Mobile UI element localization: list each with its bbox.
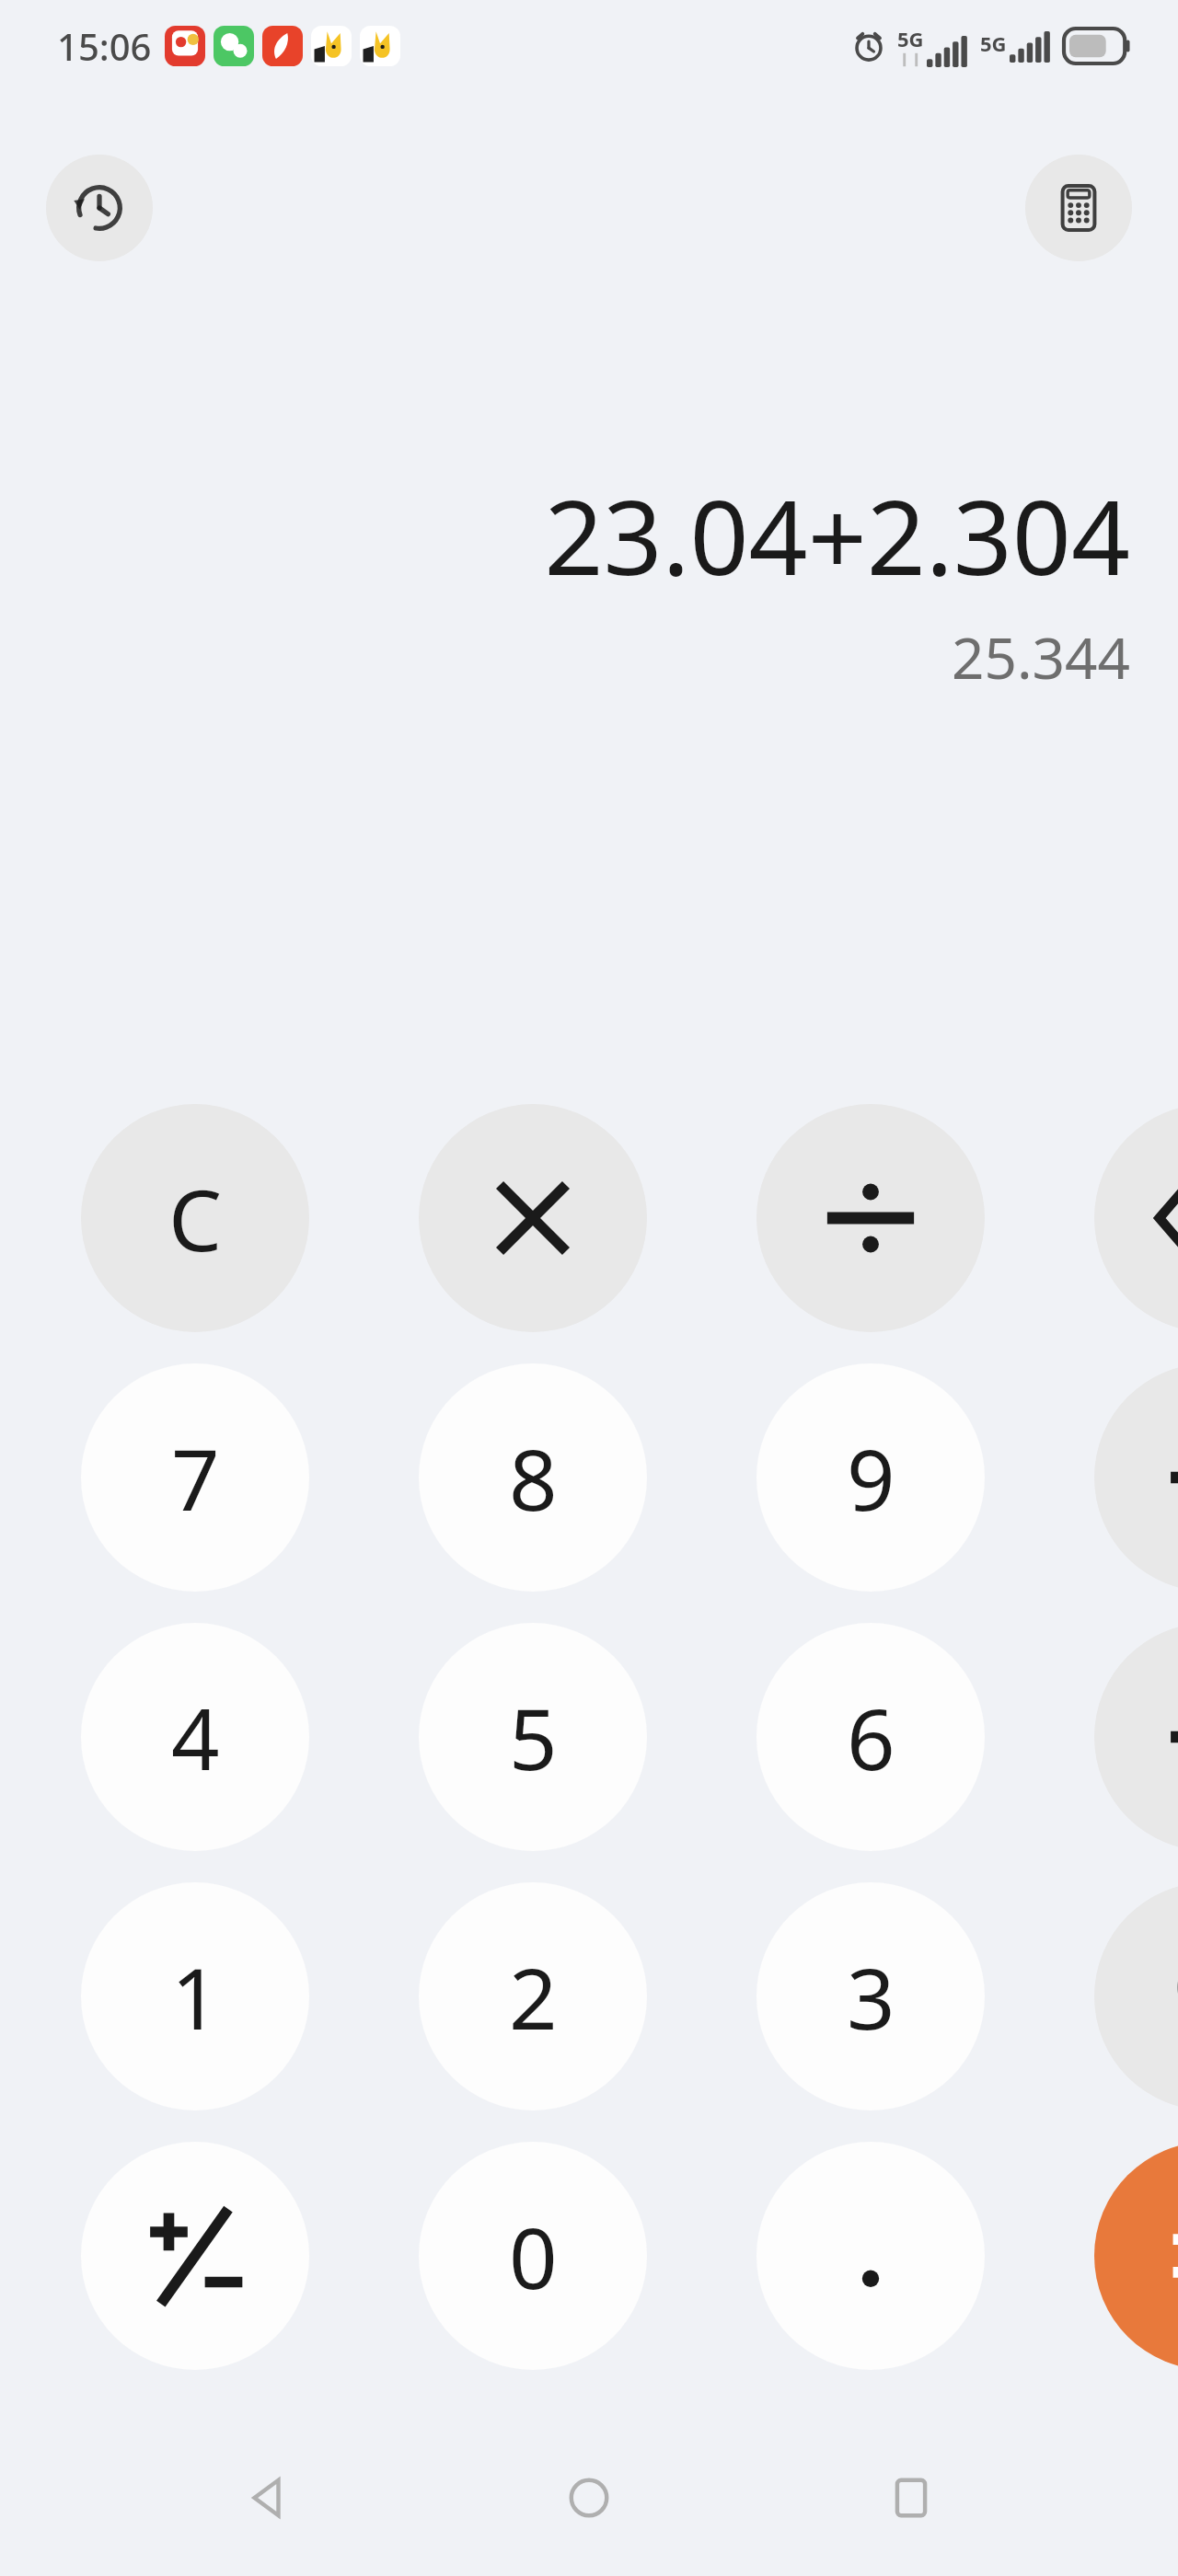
button[interactable]: 9 — [756, 1363, 985, 1592]
button[interactable]: 3 — [756, 1882, 985, 2110]
staticText: 2 — [509, 1939, 558, 2054]
staticText: 15:06 — [57, 21, 152, 71]
button[interactable]: = — [1094, 2142, 1178, 2370]
staticText: 25.344 — [952, 618, 1130, 696]
staticText: 9 — [847, 1420, 895, 1535]
staticText: % — [1173, 1939, 1178, 2054]
button[interactable]: plus minus — [81, 2142, 309, 2370]
staticText: 7 — [171, 1420, 220, 1535]
button[interactable]: 4 — [81, 1623, 309, 1851]
button[interactable]: 0 — [419, 2142, 647, 2370]
staticText: 3 — [847, 1939, 895, 2054]
button[interactable]: divide — [756, 1104, 985, 1332]
button[interactable]: . — [756, 2142, 985, 2370]
button[interactable]: 7 — [81, 1363, 309, 1592]
button[interactable]: 2 — [419, 1882, 647, 2110]
button[interactable]: History — [46, 155, 153, 261]
staticText: 6 — [847, 1680, 895, 1795]
button[interactable]: 6 — [756, 1623, 985, 1851]
staticText: 5 — [509, 1680, 558, 1795]
button[interactable]: 8 — [419, 1363, 647, 1592]
staticText: 8 — [509, 1420, 558, 1535]
staticText: 4 — [171, 1680, 220, 1795]
button[interactable]: multiply — [419, 1104, 647, 1332]
staticText: 0 — [509, 2199, 558, 2314]
button[interactable]: 1 — [81, 1882, 309, 2110]
staticText: 23.04+2.304 — [544, 465, 1130, 605]
button[interactable]: Scientific calculator — [1025, 155, 1132, 261]
button[interactable]: Recents — [856, 2443, 966, 2553]
button[interactable]: minus — [1094, 1363, 1178, 1592]
button[interactable]: 5 — [419, 1623, 647, 1851]
staticText: C — [168, 1161, 223, 1276]
button[interactable]: Home — [534, 2443, 644, 2553]
button[interactable]: delete — [1094, 1104, 1178, 1332]
button[interactable]: plus — [1094, 1623, 1178, 1851]
button[interactable]: % — [1094, 1882, 1178, 2110]
staticText: 5G — [980, 29, 1007, 57]
staticText: 5G — [897, 25, 924, 52]
button[interactable]: Back — [212, 2443, 322, 2553]
staticText: 1 — [171, 1939, 220, 2054]
button[interactable]: C — [81, 1104, 309, 1332]
